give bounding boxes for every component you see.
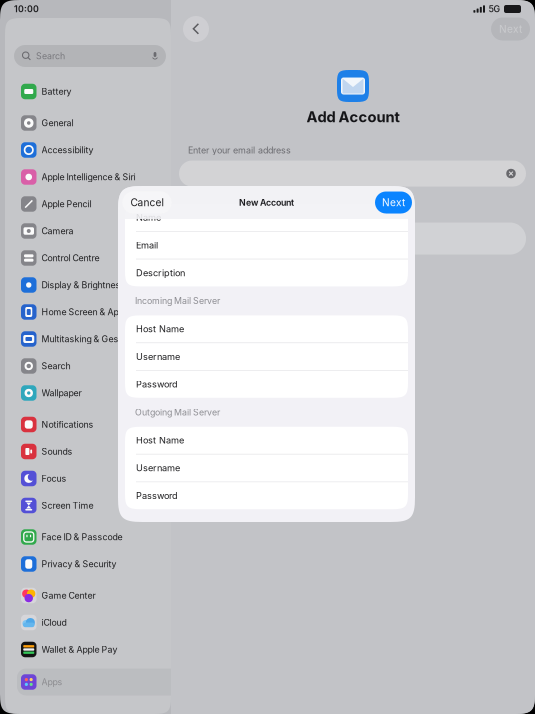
button[interactable]: Privacy & Security <box>5 550 190 577</box>
button[interactable]: Username <box>125 454 408 481</box>
staticText: Email <box>136 240 158 251</box>
staticText: General <box>41 118 73 128</box>
button[interactable]: Password <box>125 482 408 509</box>
button[interactable]: Multitasking & Gestures <box>5 325 190 352</box>
staticText: Screen Time <box>41 500 93 511</box>
staticText: Host Name <box>136 435 184 446</box>
button[interactable]: Cancel <box>122 191 171 213</box>
button[interactable]: Back <box>183 16 209 42</box>
staticText: Enter your email address <box>188 145 291 155</box>
staticText: New Account <box>239 197 294 208</box>
staticText: Face ID & Passcode <box>41 532 122 542</box>
button[interactable]: Camera <box>5 217 190 244</box>
staticText: Sounds <box>41 446 72 457</box>
staticText: Username <box>136 462 180 474</box>
button[interactable]: Notifications <box>5 411 190 438</box>
staticText: Add Account <box>306 108 399 126</box>
button[interactable]: Home Screen & App Library <box>5 298 190 325</box>
button[interactable]: Search <box>5 352 190 379</box>
staticText: Next <box>499 23 522 35</box>
staticText: Search <box>36 51 65 61</box>
button[interactable]: Description <box>125 259 408 286</box>
staticText: Multitasking & Gestures <box>41 334 139 344</box>
staticText: Description <box>136 267 185 278</box>
button[interactable]: Next <box>491 17 530 40</box>
button[interactable]: iCloud <box>5 609 190 636</box>
button[interactable]: Apple Intelligence & Siri <box>5 163 190 190</box>
button[interactable]: Next <box>375 191 412 213</box>
staticText: Display & Brightness <box>41 280 125 290</box>
button[interactable]: Search <box>14 45 166 67</box>
staticText: Wallpaper <box>41 388 81 398</box>
button[interactable]: Wallpaper <box>5 379 190 406</box>
staticText: Incoming Mail Server <box>135 296 220 306</box>
button[interactable]: Battery <box>5 78 190 105</box>
button[interactable]: Apps <box>5 668 190 695</box>
staticText: Next <box>382 196 405 209</box>
staticText: Home Screen & App Library <box>41 307 153 317</box>
staticText: Game Center <box>41 590 95 601</box>
button[interactable]: Wallet & Apple Pay <box>5 636 190 663</box>
staticText: Username <box>136 351 180 362</box>
staticText: Outgoing Mail Server <box>135 407 220 418</box>
staticText: Focus <box>41 473 66 484</box>
staticText: iCloud <box>41 617 66 628</box>
button[interactable]: Accessibility <box>5 136 190 163</box>
staticText: Password <box>136 490 178 501</box>
staticText: Control Centre <box>41 253 99 263</box>
staticText: Password <box>136 379 178 390</box>
button[interactable]: Name <box>125 204 408 231</box>
staticText: Camera <box>41 226 73 236</box>
staticText: Search <box>41 361 70 371</box>
staticText: Apple Pencil <box>41 199 91 209</box>
button[interactable]: Apple Pencil <box>5 190 190 217</box>
button[interactable]: Display & Brightness <box>5 271 190 298</box>
button[interactable]: Host Name <box>125 427 408 454</box>
button[interactable]: Game Center <box>5 582 190 609</box>
staticText: Apps <box>41 677 62 687</box>
staticText: Host Name <box>136 323 184 334</box>
staticText: Privacy & Security <box>41 559 116 569</box>
staticText: Battery <box>41 86 71 97</box>
button[interactable]: Password <box>125 371 408 398</box>
button[interactable]: Control Centre <box>5 244 190 271</box>
button[interactable]: General <box>5 109 190 136</box>
button[interactable]: Face ID & Passcode <box>5 523 190 550</box>
button[interactable]: Screen Time <box>5 492 190 519</box>
staticText: Accessibility <box>41 145 93 155</box>
staticText: Notifications <box>41 419 93 430</box>
staticText: Wallet & Apple Pay <box>41 644 117 655</box>
staticText: Cancel <box>130 196 163 209</box>
button[interactable]: Focus <box>5 465 190 492</box>
staticText: 10:00 <box>14 4 39 14</box>
button[interactable]: Host Name <box>125 315 408 342</box>
button[interactable]: Username <box>125 343 408 370</box>
staticText: Apple Intelligence & Siri <box>41 172 135 182</box>
button[interactable]: Sounds <box>5 438 190 465</box>
staticText: Name <box>136 212 161 223</box>
button[interactable]: Email <box>125 232 408 259</box>
staticText: 5G <box>488 4 500 14</box>
